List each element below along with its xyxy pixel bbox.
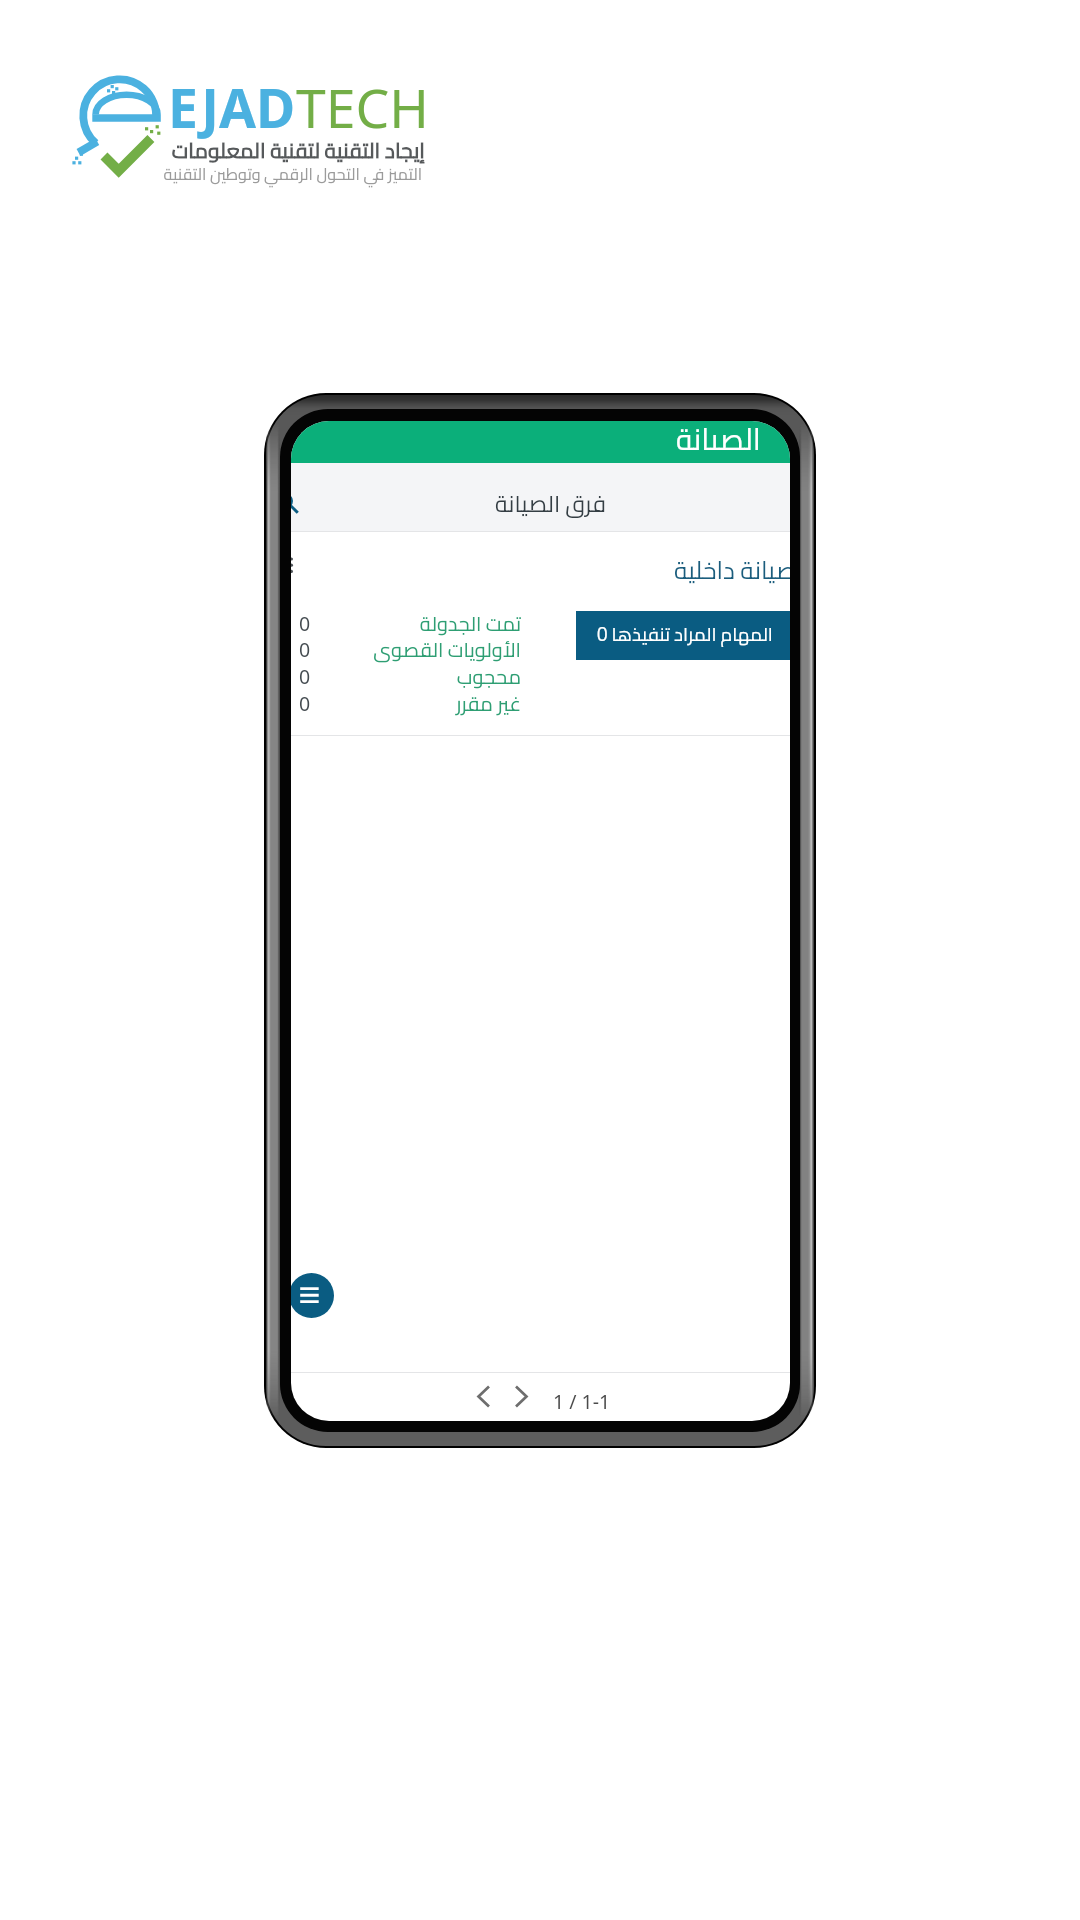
button[interactable]: Menu (291, 1273, 334, 1318)
staticText: الأولويات القصوى (373, 631, 521, 668)
staticText: EJAD (168, 71, 296, 144)
staticText: 0 (299, 636, 311, 662)
button[interactable]: 0 المهام المراد تنفيذها (576, 611, 790, 660)
button[interactable]: More options (291, 555, 305, 573)
button[interactable]: Next page (510, 1381, 540, 1411)
staticText: 0 المهام المراد تنفيذها (597, 617, 773, 652)
staticText: التميز في التحول الرقمي وتوطين التقنية (163, 159, 422, 189)
button[interactable]: محجوب (291, 658, 790, 695)
staticText: 0 (299, 690, 311, 716)
staticText: إيجاد التقنية لتقنية المعلومات (171, 131, 425, 170)
staticText: 1 / 1-1 (553, 1388, 611, 1415)
staticText: غير مقرر (456, 685, 521, 722)
button[interactable]: تمت الجدولة (291, 605, 790, 642)
staticText: فرق الصيانة (495, 482, 606, 525)
staticText: الصيانة (676, 421, 761, 453)
button[interactable]: غير مقرر (291, 685, 790, 722)
staticText: صيانة داخلية (674, 547, 790, 593)
button[interactable]: الأولويات القصوى (291, 631, 790, 668)
button[interactable]: Search (291, 487, 304, 521)
staticText: 0 (299, 610, 311, 636)
staticText: محجوب (456, 658, 521, 695)
button[interactable]: Previous page (472, 1381, 502, 1411)
staticText: 0 (299, 663, 311, 689)
staticText: تمت الجدولة (419, 605, 521, 642)
staticText: TECH (296, 71, 429, 144)
button[interactable]: الصيانة (291, 421, 790, 463)
